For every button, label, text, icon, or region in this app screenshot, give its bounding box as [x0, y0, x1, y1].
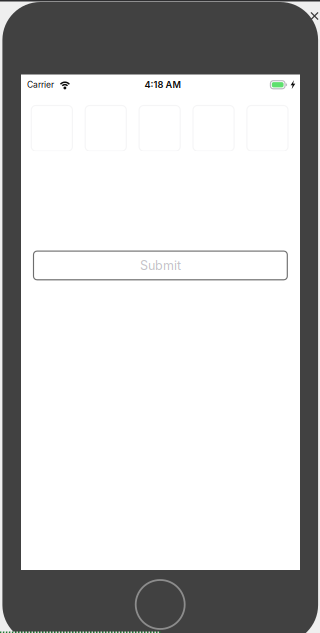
staticText: 4:18 AM: [144, 79, 180, 90]
staticText: Submit: [140, 258, 181, 273]
staticText: Carrier: [27, 80, 54, 90]
button[interactable]: Submit: [33, 251, 287, 280]
button[interactable]: Close: [310, 12, 318, 20]
